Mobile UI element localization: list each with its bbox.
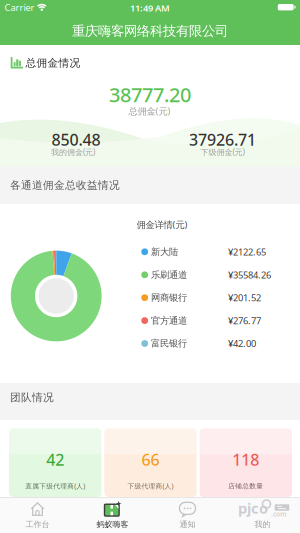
staticText: 总佣金(元) xyxy=(128,105,170,117)
button[interactable]: 蚂蚁嗨客 xyxy=(75,497,150,533)
staticText: 工作台 xyxy=(25,519,49,529)
staticText: 11:49 AM xyxy=(130,2,170,14)
button[interactable]: 通知 xyxy=(150,497,225,533)
staticText: 各通道佣金总收益情况 xyxy=(10,179,120,192)
staticText: 富民银行 xyxy=(151,338,187,349)
staticText: 佣金详情(元) xyxy=(136,218,187,231)
staticText: 总佣金情况 xyxy=(25,56,80,69)
staticText: 37926.71 xyxy=(189,129,256,150)
staticText: 直属下级代理商(人) xyxy=(25,482,85,490)
staticText: pjco xyxy=(238,498,268,518)
staticText: ¥276.77 xyxy=(228,314,261,327)
staticText: 通知 xyxy=(179,519,195,529)
button[interactable]: 我的 xyxy=(225,497,300,533)
staticText: ¥35584.26 xyxy=(228,269,271,281)
staticText: Carrier xyxy=(4,1,34,14)
staticText: 网商银行 xyxy=(151,292,187,303)
staticText: 我的佣金(元) xyxy=(51,147,95,157)
staticText: 蚂蚁嗨客 xyxy=(96,519,128,529)
staticText: 118 xyxy=(232,449,259,470)
staticText: ¥42.00 xyxy=(228,337,256,350)
button[interactable]: 工作台 xyxy=(0,497,75,533)
staticText: 乐刷通道 xyxy=(151,269,187,281)
staticText: .com xyxy=(271,510,286,518)
staticText: 下级佣金(元) xyxy=(200,147,244,157)
staticText: 团队情况 xyxy=(10,391,54,404)
staticText: 下级代理商(人) xyxy=(128,482,174,490)
staticText: 38777.20 xyxy=(109,81,191,108)
staticText: 我的 xyxy=(254,519,270,529)
staticText: 42 xyxy=(46,449,64,470)
staticText: 新大陆 xyxy=(151,246,178,258)
staticText: ¥201.52 xyxy=(228,291,261,304)
staticText: 店铺总数量 xyxy=(228,482,263,490)
staticText: ¥2122.65 xyxy=(228,246,266,258)
staticText: 66 xyxy=(142,449,160,470)
staticText: 850.48 xyxy=(51,129,100,150)
staticText: 重庆嗨客网络科技有限公司 xyxy=(72,23,228,39)
staticText: 官方通道 xyxy=(151,315,187,326)
